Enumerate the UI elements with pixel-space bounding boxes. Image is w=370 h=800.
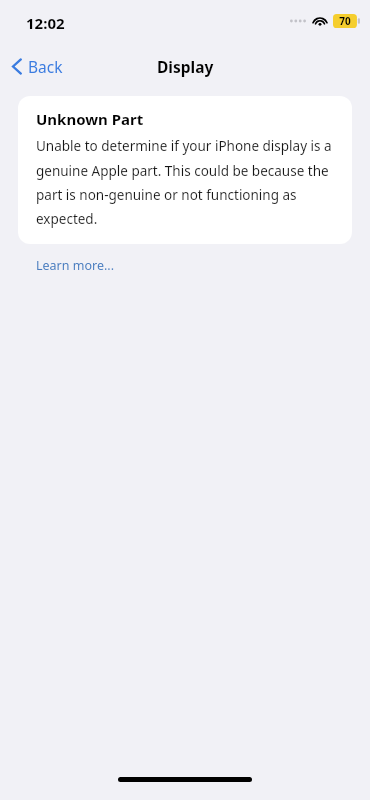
staticText: Display	[157, 56, 214, 77]
staticText: 12:02	[26, 13, 65, 33]
staticText: Unknown Part	[36, 109, 144, 129]
button[interactable]: Back	[6, 51, 68, 82]
other: Home indicator	[0, 770, 370, 800]
staticText: Unable to determine if your iPhone displ…	[36, 137, 334, 228]
button[interactable]: Learn more...	[18, 251, 133, 280]
staticText: Back	[28, 56, 63, 77]
staticText: Learn more...	[36, 257, 115, 274]
staticText: 70	[333, 14, 357, 28]
button[interactable]: Unknown Part	[18, 96, 352, 244]
